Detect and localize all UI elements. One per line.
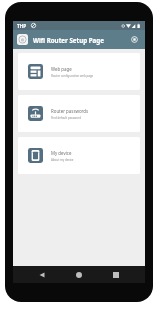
button[interactable]: Info — [129, 34, 140, 45]
button[interactable]: App icon — [17, 34, 28, 45]
button[interactable]: Back — [34, 267, 50, 283]
staticText: About my device — [51, 158, 74, 162]
staticText: My device — [51, 150, 72, 156]
staticText: Router configuration web page — [51, 74, 94, 78]
staticText: Web page — [51, 66, 72, 72]
button[interactable]: Web page — [18, 53, 140, 90]
button[interactable]: Home — [71, 267, 87, 283]
staticText: THP — [17, 23, 27, 29]
staticText: Router passwords — [51, 108, 89, 114]
button[interactable]: Router passwords — [18, 95, 140, 132]
button[interactable]: My device — [18, 137, 140, 174]
staticText: Wifi Router Setup Page — [33, 36, 104, 44]
button[interactable]: Recents — [108, 267, 124, 283]
staticText: Find default password — [51, 116, 82, 120]
